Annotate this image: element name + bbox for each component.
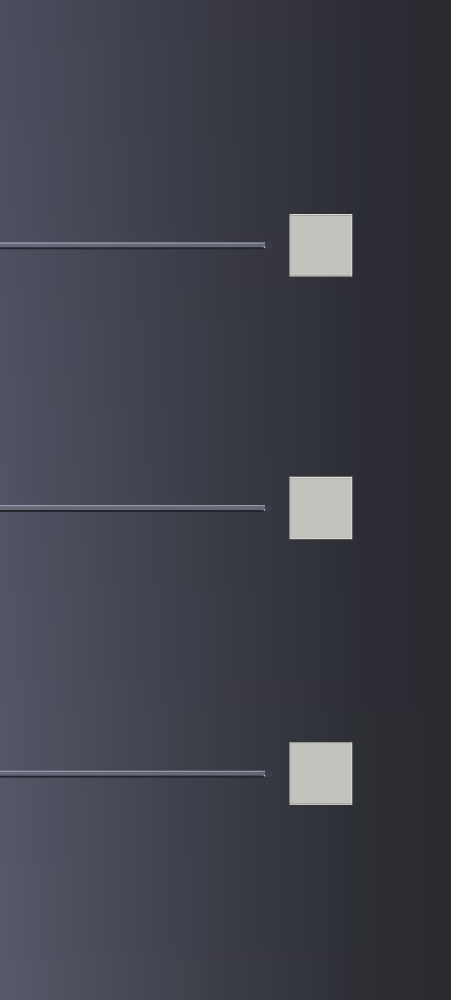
button[interactable]: Item 3 — [0, 733, 451, 813]
button[interactable]: Item 1 — [0, 205, 451, 285]
button[interactable]: Item 2 — [0, 468, 451, 548]
